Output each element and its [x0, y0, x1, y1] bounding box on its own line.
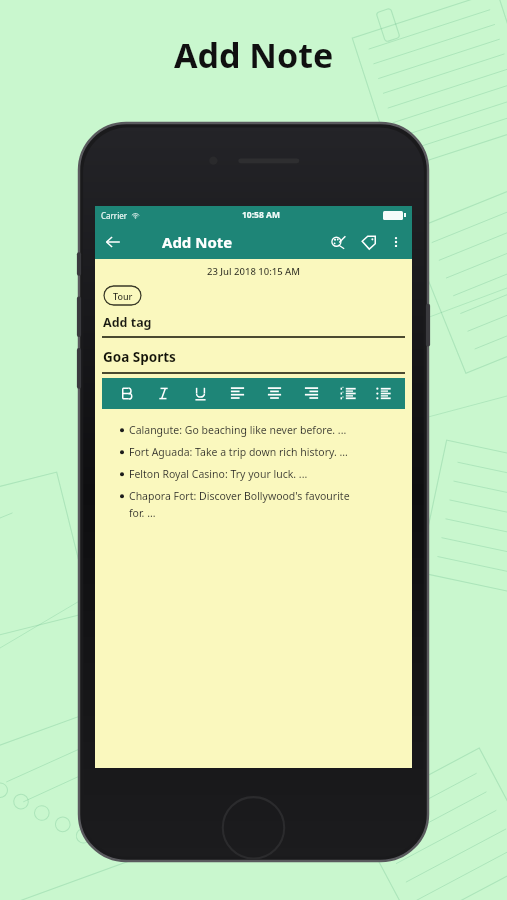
button[interactable]: Tour [103, 285, 142, 306]
staticText: Add tag [103, 314, 152, 331]
button[interactable]: Bold [108, 378, 145, 409]
button[interactable]: Italic [145, 378, 182, 409]
staticText: Goa Sports [103, 348, 176, 366]
button[interactable]: Underline [182, 378, 219, 409]
staticText: 10:58 AM [242, 209, 280, 221]
button[interactable]: Align left [219, 378, 256, 409]
button[interactable]: Add tag [103, 314, 152, 331]
button[interactable]: Goa Sports [103, 348, 176, 366]
button[interactable]: Bulleted list [367, 378, 399, 409]
staticText: Fort Aguada: Take a trip down rich histo… [129, 445, 348, 459]
button[interactable]: More options [383, 229, 409, 255]
button[interactable]: Tags [353, 227, 383, 257]
staticText: Tour [113, 290, 133, 302]
button[interactable]: Align right [293, 378, 330, 409]
button[interactable]: Back [95, 224, 130, 259]
staticText: 23 Jul 2018 10:15 AM [207, 265, 301, 278]
staticText: Felton Royal Casino: Try your luck. ... [129, 467, 308, 481]
button[interactable]: Colour [323, 227, 353, 257]
button[interactable]: Align center [256, 378, 293, 409]
staticText: Chapora Fort: Discover Bollywood's favou… [129, 489, 350, 520]
staticText: Add Note [162, 232, 233, 252]
button[interactable]: Numbered list [330, 378, 367, 409]
staticText: Carrier [101, 210, 128, 221]
staticText: Calangute: Go beaching like never before… [129, 423, 347, 437]
staticText: Add Note [174, 32, 334, 78]
